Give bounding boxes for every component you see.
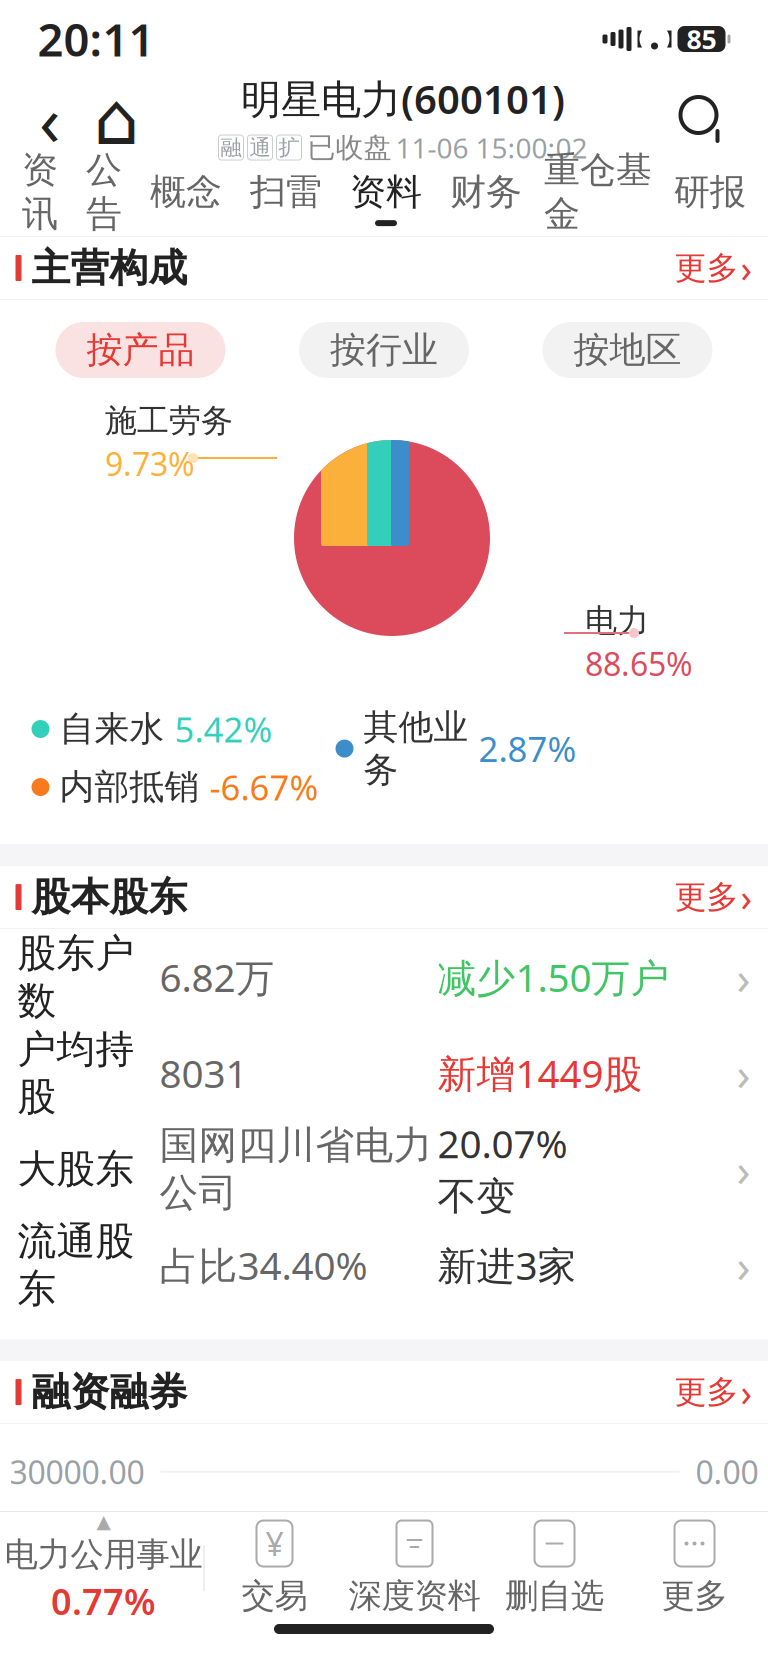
button[interactable]: 资料	[336, 162, 436, 234]
button[interactable]: 财务	[436, 162, 536, 234]
staticText: 0.00	[695, 1450, 758, 1493]
staticText: 更多	[661, 1575, 727, 1616]
staticText: 概念	[150, 170, 222, 214]
button[interactable]: 公告	[72, 162, 136, 234]
staticText: ⌂	[93, 78, 139, 160]
button[interactable]: ¥	[204, 1513, 344, 1623]
staticText: 8031	[159, 1047, 247, 1099]
button[interactable]: 更多	[654, 235, 752, 301]
staticText: 研报	[674, 170, 746, 214]
staticText: ›	[740, 1367, 752, 1417]
staticText: 电力公用事业	[4, 1534, 202, 1575]
staticText: ›	[736, 947, 750, 1007]
button[interactable]: 概念	[136, 162, 236, 234]
staticText: ›	[740, 872, 752, 922]
staticText: 融	[220, 134, 241, 161]
staticText: -6.67%	[209, 764, 318, 810]
staticText: 自来水	[59, 708, 164, 750]
staticText: 11-06 15:00:02	[395, 129, 587, 166]
staticText: 财务	[450, 170, 522, 214]
staticText: 占比34.40%	[159, 1239, 367, 1291]
staticText: 通	[249, 134, 270, 161]
button[interactable]: 更多	[624, 1513, 764, 1623]
staticText: ›	[740, 243, 752, 293]
staticText: 户均持股	[17, 1026, 134, 1121]
staticText: 资料	[350, 170, 422, 214]
staticText: 已收盘	[307, 130, 391, 165]
staticText: 按行业	[330, 328, 438, 372]
button[interactable]: 更多	[654, 1359, 752, 1425]
staticText: 新进3家	[437, 1239, 576, 1291]
staticText: 股本股东	[31, 873, 187, 921]
staticText: 新增1449股	[437, 1047, 642, 1099]
staticText: 公告	[86, 148, 122, 236]
button[interactable]: 删自选	[484, 1513, 624, 1623]
button[interactable]: 按地区	[542, 322, 712, 378]
staticText: 9.73%	[105, 442, 195, 485]
button[interactable]: 按行业	[299, 322, 469, 378]
staticText: ›	[736, 1235, 750, 1295]
staticText: 深度资料	[348, 1575, 480, 1616]
button[interactable]: 大股东	[0, 1121, 768, 1217]
button[interactable]: ▲	[3, 1513, 203, 1623]
button[interactable]: 按产品	[55, 322, 225, 378]
staticText: 国网四川省电力公司	[159, 1122, 432, 1217]
staticText: 明星电力(600101)	[241, 72, 565, 125]
button[interactable]: 流通股东	[0, 1217, 768, 1313]
button[interactable]: Back	[17, 82, 81, 156]
staticText: 扩	[278, 134, 299, 161]
staticText: 更多	[674, 248, 738, 288]
staticText: ›	[736, 1139, 750, 1199]
staticText: 扫雷	[250, 170, 322, 214]
staticText: 20.07%	[437, 1118, 567, 1169]
staticText: 股东户数	[17, 930, 134, 1025]
button[interactable]: Search	[654, 82, 750, 156]
staticText: 流通股东	[17, 1218, 134, 1313]
button[interactable]: 更多	[654, 864, 752, 930]
staticText: 交易	[241, 1575, 307, 1616]
staticText: 30000.00	[9, 1450, 144, 1493]
staticText: 2.87%	[478, 726, 576, 772]
staticText: ‹	[39, 73, 60, 165]
staticText: ¥	[265, 1522, 283, 1565]
staticText: 删自选	[505, 1575, 604, 1616]
button[interactable]: Home	[81, 82, 151, 156]
staticText: 大股东	[17, 1145, 134, 1193]
button[interactable]: 资讯	[8, 162, 72, 234]
staticText: 0.77%	[51, 1577, 156, 1625]
button[interactable]: 研报	[660, 162, 760, 234]
staticText: 5.42%	[174, 706, 272, 752]
staticText: 20:11	[37, 9, 154, 69]
staticText: 更多	[674, 1372, 738, 1412]
staticText: 其他业务	[363, 706, 468, 791]
staticText: 主营构成	[31, 244, 187, 292]
staticText: 融资融券	[31, 1368, 187, 1416]
staticText: 85	[686, 21, 716, 57]
staticText: ▲	[96, 1511, 110, 1532]
staticText: 施工劳务	[105, 401, 233, 440]
staticText: 88.65%	[585, 642, 693, 685]
staticText: 电力	[585, 601, 649, 640]
button[interactable]: 股东户数	[0, 929, 768, 1025]
staticText: 减少1.50万户	[437, 951, 669, 1003]
staticText: 资讯	[22, 148, 58, 236]
button[interactable]: 重仓基金	[536, 162, 660, 234]
staticText: 内部抵销	[59, 766, 199, 808]
staticText: 6.82万	[159, 951, 274, 1003]
staticText: ›	[736, 1043, 750, 1103]
button[interactable]: 扫雷	[236, 162, 336, 234]
staticText: 不变	[437, 1173, 515, 1220]
staticText: 更多	[674, 877, 738, 917]
button[interactable]: 深度资料	[344, 1513, 484, 1623]
staticText: 按产品	[86, 328, 194, 372]
staticText: 重仓基金	[544, 148, 652, 236]
staticText: 按地区	[573, 328, 681, 372]
button[interactable]: 户均持股	[0, 1025, 768, 1121]
